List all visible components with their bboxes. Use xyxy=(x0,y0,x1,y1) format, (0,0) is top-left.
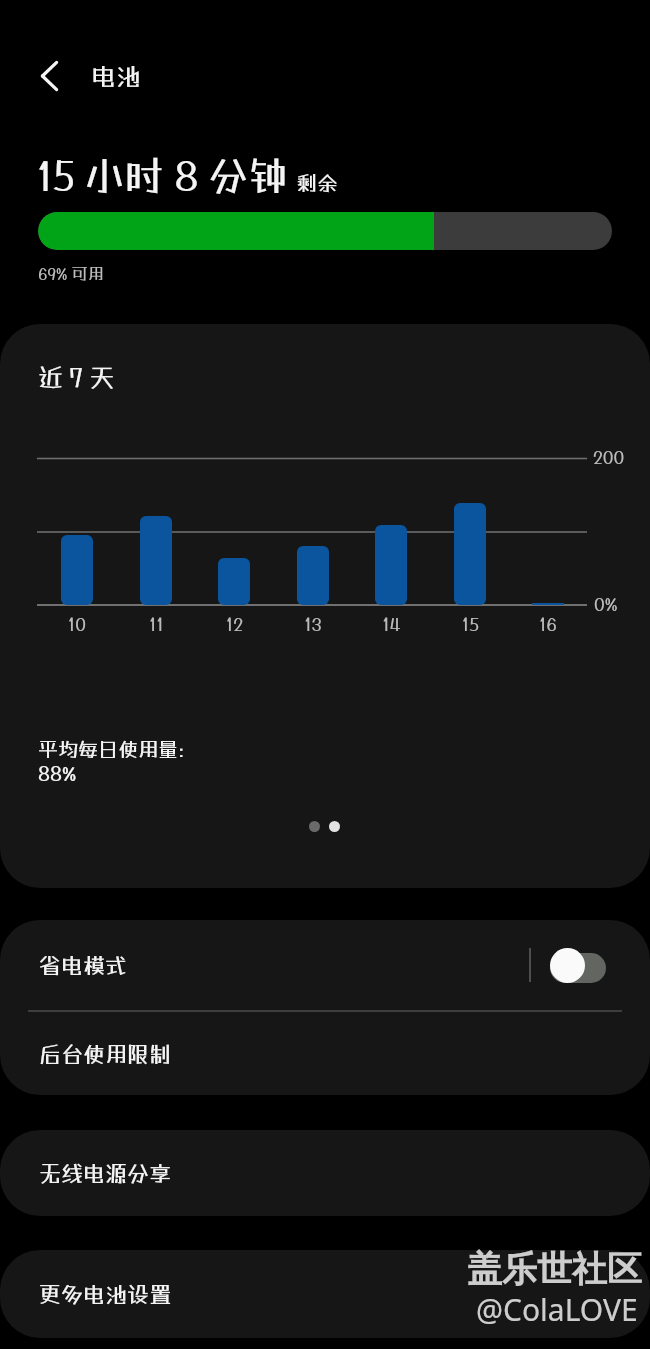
button[interactable]: Back xyxy=(28,55,72,99)
button[interactable]: 省电模式 xyxy=(550,947,606,983)
staticText: 15 xyxy=(462,613,479,634)
staticText: 平均每日使用量： xyxy=(38,737,198,761)
staticText: 16 xyxy=(539,613,557,634)
staticText: 省电模式 xyxy=(39,952,128,978)
staticText: 88% xyxy=(38,761,77,785)
staticText: 11 xyxy=(149,613,164,634)
staticText: 13 xyxy=(304,613,322,634)
button[interactable]: 近 7 天 xyxy=(0,324,650,888)
staticText: 盖乐世社区 xyxy=(467,1247,642,1291)
staticText: 69% 可用 xyxy=(38,264,104,283)
staticText: 无线电源分享 xyxy=(39,1160,172,1186)
staticText: 12 xyxy=(226,613,243,634)
staticText: 10 xyxy=(68,613,86,634)
staticText: 近 7 天 xyxy=(38,362,115,391)
button[interactable]: 无线电源分享 xyxy=(0,1130,650,1216)
button[interactable]: 更多电池设置 xyxy=(0,1250,650,1338)
staticText: 14 xyxy=(382,613,401,634)
staticText: 剩余 xyxy=(296,170,338,195)
staticText: @ColaLOVE xyxy=(476,1289,638,1330)
staticText: 后台使用限制 xyxy=(39,1041,172,1067)
button[interactable]: 省电模式 xyxy=(0,920,650,1010)
button[interactable]: 后台使用限制 xyxy=(0,1012,650,1095)
staticText: 更多电池设置 xyxy=(39,1281,172,1307)
staticText: 200 xyxy=(593,446,625,467)
staticText: 15 小时 8 分钟 xyxy=(37,152,289,199)
staticText: 0% xyxy=(594,593,618,614)
staticText: 电池 xyxy=(91,61,142,90)
